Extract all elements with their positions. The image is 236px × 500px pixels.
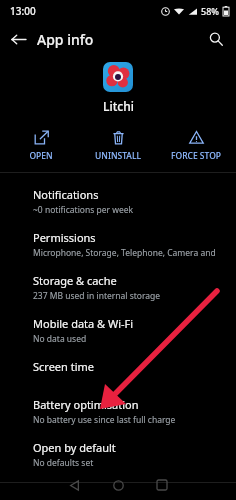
button[interactable]: FORCE STOP	[159, 128, 233, 164]
staticText: OPEN	[29, 150, 53, 162]
staticText: Permissions	[33, 230, 96, 245]
staticText: No defaults set	[33, 457, 94, 469]
staticText: Storage & cache	[33, 273, 117, 288]
staticText: Open by default	[33, 440, 116, 455]
staticText: Battery optimisation	[33, 397, 139, 412]
staticText: Mobile data & Wi-Fi	[33, 316, 134, 331]
staticText: No data used	[33, 333, 87, 345]
button[interactable]: UNINSTALL	[81, 128, 155, 164]
button[interactable]: ADVANCED	[0, 483, 236, 500]
button[interactable]: Search	[202, 25, 230, 53]
button[interactable]: Storage & cache	[0, 266, 236, 309]
button[interactable]: OPEN	[4, 128, 78, 164]
button[interactable]: Screen time	[0, 352, 236, 390]
staticText: Notifications	[33, 187, 99, 202]
button[interactable]: Back	[4, 25, 32, 53]
button[interactable]: Notifications	[0, 180, 236, 223]
button[interactable]: Back	[52, 470, 96, 500]
staticText: 13:00	[10, 4, 36, 18]
button[interactable]: Permissions	[0, 223, 236, 266]
staticText: 237 MB used in internal storage	[33, 290, 161, 302]
button[interactable]: Battery optimisation	[0, 390, 236, 433]
staticText: No battery use since last full charge	[33, 414, 176, 426]
button[interactable]: Recent apps	[140, 470, 184, 500]
staticText: 58%	[201, 5, 219, 17]
staticText: FORCE STOP	[171, 150, 221, 162]
staticText: ~0 notifications per week	[33, 204, 134, 216]
button[interactable]: Open by default	[0, 433, 236, 476]
staticText: Litchi	[103, 98, 134, 114]
button[interactable]: Mobile data & Wi-Fi	[0, 309, 236, 352]
button[interactable]: Home	[96, 470, 140, 500]
staticText: UNINSTALL	[95, 150, 141, 162]
staticText: App info	[37, 30, 94, 49]
staticText: Screen time	[33, 359, 95, 374]
staticText: Microphone, Storage, Telephone, Camera a…	[33, 247, 222, 259]
